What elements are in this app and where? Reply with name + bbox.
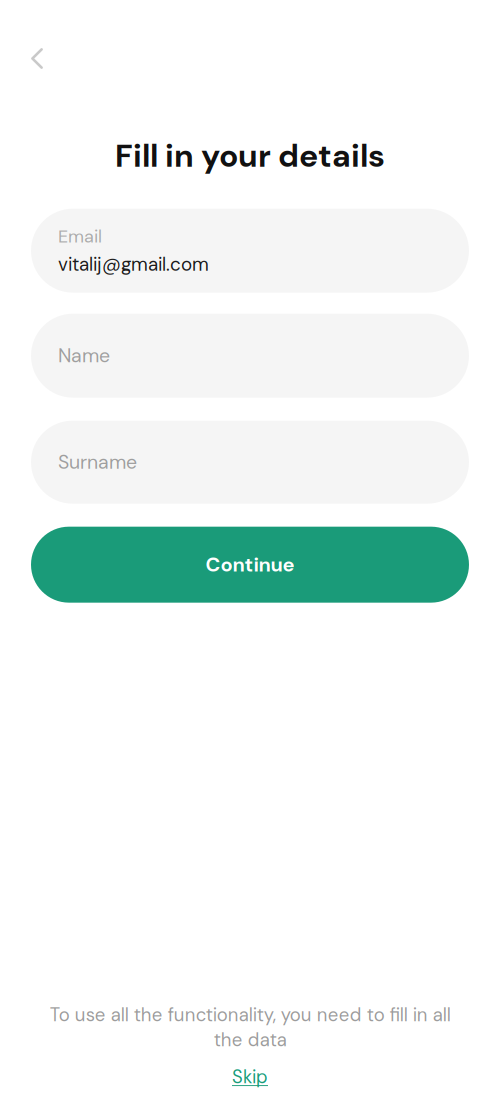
button[interactable]: Skip <box>218 1062 282 1092</box>
staticText: Email <box>58 225 102 248</box>
button[interactable]: Continue <box>31 527 469 603</box>
button[interactable]: Name <box>31 314 469 398</box>
staticText: Name <box>58 343 110 368</box>
staticText: Fill in your details <box>115 135 385 177</box>
staticText: To use all the functionality, you need t… <box>49 1003 450 1052</box>
staticText: vitalij@gmail.com <box>58 252 209 277</box>
button[interactable]: Back <box>0 36 57 81</box>
staticText: Surname <box>58 449 137 475</box>
staticText: Skip <box>232 1065 268 1089</box>
button[interactable]: Surname <box>31 421 469 504</box>
staticText: Continue <box>205 552 294 578</box>
button[interactable]: Email <box>31 209 469 293</box>
